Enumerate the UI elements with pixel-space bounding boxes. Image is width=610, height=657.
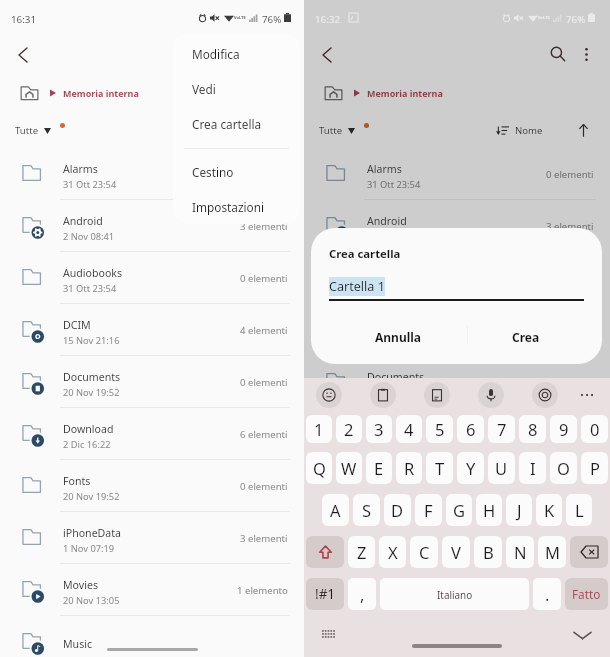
button[interactable]: 9	[550, 415, 577, 443]
button[interactable]: Download	[0, 408, 304, 460]
button[interactable]: X	[379, 536, 406, 568]
staticText: 20 Nov 13:05	[367, 594, 424, 607]
staticText: Impostazioni	[192, 199, 265, 215]
button[interactable]: Impostazioni	[173, 189, 300, 224]
button[interactable]: Annulla	[333, 318, 463, 356]
button[interactable]: Collapse keyboard	[571, 624, 593, 646]
button[interactable]: R	[396, 452, 422, 484]
button[interactable]: T	[426, 452, 453, 484]
button[interactable]: Vedi	[173, 71, 300, 106]
button[interactable]: More options	[568, 36, 604, 72]
button[interactable]: C	[410, 536, 438, 568]
button[interactable]: Fonts	[0, 460, 304, 512]
staticText: 6 elementi	[240, 428, 288, 441]
button[interactable]: Documents	[0, 356, 304, 408]
button[interactable]: Audiobooks	[304, 252, 610, 304]
button[interactable]: Tutte	[15, 124, 65, 137]
button[interactable]: D	[384, 494, 411, 526]
button[interactable]: G	[446, 494, 472, 526]
button[interactable]: Android	[0, 200, 304, 252]
button[interactable]: N	[506, 536, 534, 568]
button[interactable]: L	[566, 494, 592, 526]
button[interactable]: Movies	[0, 564, 304, 616]
button[interactable]: Nome	[496, 124, 543, 137]
button[interactable]: E	[366, 452, 392, 484]
staticText: L	[575, 499, 584, 521]
button[interactable]: Cestino	[173, 154, 300, 189]
button[interactable]: V	[442, 536, 470, 568]
button[interactable]: back	[570, 536, 608, 568]
button[interactable]: Memoria interna	[20, 76, 139, 110]
staticText: 9	[559, 418, 569, 440]
button[interactable]: 1	[306, 415, 332, 443]
button[interactable]: Documents	[304, 356, 610, 408]
button[interactable]: DCIM	[0, 304, 304, 356]
button[interactable]: U	[488, 452, 515, 484]
button[interactable]: M	[538, 536, 566, 568]
staticText: 3 elementi	[546, 532, 594, 545]
button[interactable]: 8	[519, 415, 546, 443]
button[interactable]: Fatto	[565, 578, 608, 610]
button[interactable]: Italiano	[380, 578, 529, 610]
button[interactable]: J	[506, 494, 532, 526]
button[interactable]: W	[336, 452, 362, 484]
button[interactable]: Fonts	[304, 460, 610, 512]
button[interactable]: .	[533, 578, 561, 610]
button[interactable]: H	[476, 494, 502, 526]
button[interactable]: Audiobooks	[0, 252, 304, 304]
button[interactable]: S	[353, 494, 380, 526]
button[interactable]: 6	[457, 415, 484, 443]
button[interactable]: A	[322, 494, 349, 526]
button[interactable]: shift	[306, 536, 344, 568]
button[interactable]: Android	[304, 200, 610, 252]
button[interactable]: Z	[348, 536, 375, 568]
button[interactable]: 7	[488, 415, 515, 443]
button[interactable]: Y	[457, 452, 484, 484]
button[interactable]: Tutte	[319, 124, 369, 137]
button[interactable]: B	[474, 536, 502, 568]
button[interactable]: DCIM	[304, 304, 610, 356]
button[interactable]: Memoria interna	[324, 76, 443, 110]
button[interactable]: Translate	[424, 382, 450, 408]
button[interactable]: Clipboard	[370, 382, 396, 408]
button[interactable]: Music	[0, 616, 304, 657]
staticText: Cestino	[192, 164, 234, 180]
button[interactable]: Alarms	[304, 148, 610, 200]
button[interactable]: K	[536, 494, 562, 526]
button[interactable]: 4	[396, 415, 422, 443]
button[interactable]: 3	[366, 415, 392, 443]
staticText: ,	[360, 583, 365, 605]
button[interactable]: Settings	[532, 382, 558, 408]
button[interactable]: Voice input	[478, 382, 504, 408]
button[interactable]: Movies	[304, 564, 610, 616]
button[interactable]: 5	[426, 415, 453, 443]
button[interactable]: Alarms	[0, 148, 304, 200]
button[interactable]: ,	[348, 578, 376, 610]
button[interactable]: Back	[5, 37, 41, 73]
button[interactable]: F	[415, 494, 442, 526]
staticText: Tutte	[15, 124, 39, 137]
button[interactable]: 2	[336, 415, 362, 443]
button[interactable]: Q	[306, 452, 332, 484]
staticText: Fatto	[572, 586, 601, 602]
button[interactable]: Sort ascending	[573, 120, 593, 140]
button[interactable]: Music	[304, 616, 610, 657]
button[interactable]: !#1	[306, 578, 344, 610]
button[interactable]: O	[550, 452, 577, 484]
button[interactable]: 0	[581, 415, 608, 443]
button[interactable]: Crea	[471, 318, 581, 356]
button[interactable]: Emoji	[316, 382, 342, 408]
button[interactable]: iPhoneData	[0, 512, 304, 564]
button[interactable]: Crea cartella	[173, 106, 300, 141]
button[interactable]: Download	[304, 408, 610, 460]
button[interactable]: P	[581, 452, 608, 484]
button[interactable]: Modifica	[173, 36, 300, 71]
button[interactable]: I	[519, 452, 546, 484]
button[interactable]: Hide keyboard	[320, 626, 337, 643]
button[interactable]: Back	[309, 37, 345, 73]
button[interactable]: More	[574, 382, 600, 408]
button[interactable]: Search	[540, 36, 576, 72]
button[interactable]: iPhoneData	[304, 512, 610, 564]
staticText: Fonts	[367, 474, 395, 488]
staticText: Modifica	[192, 46, 240, 62]
